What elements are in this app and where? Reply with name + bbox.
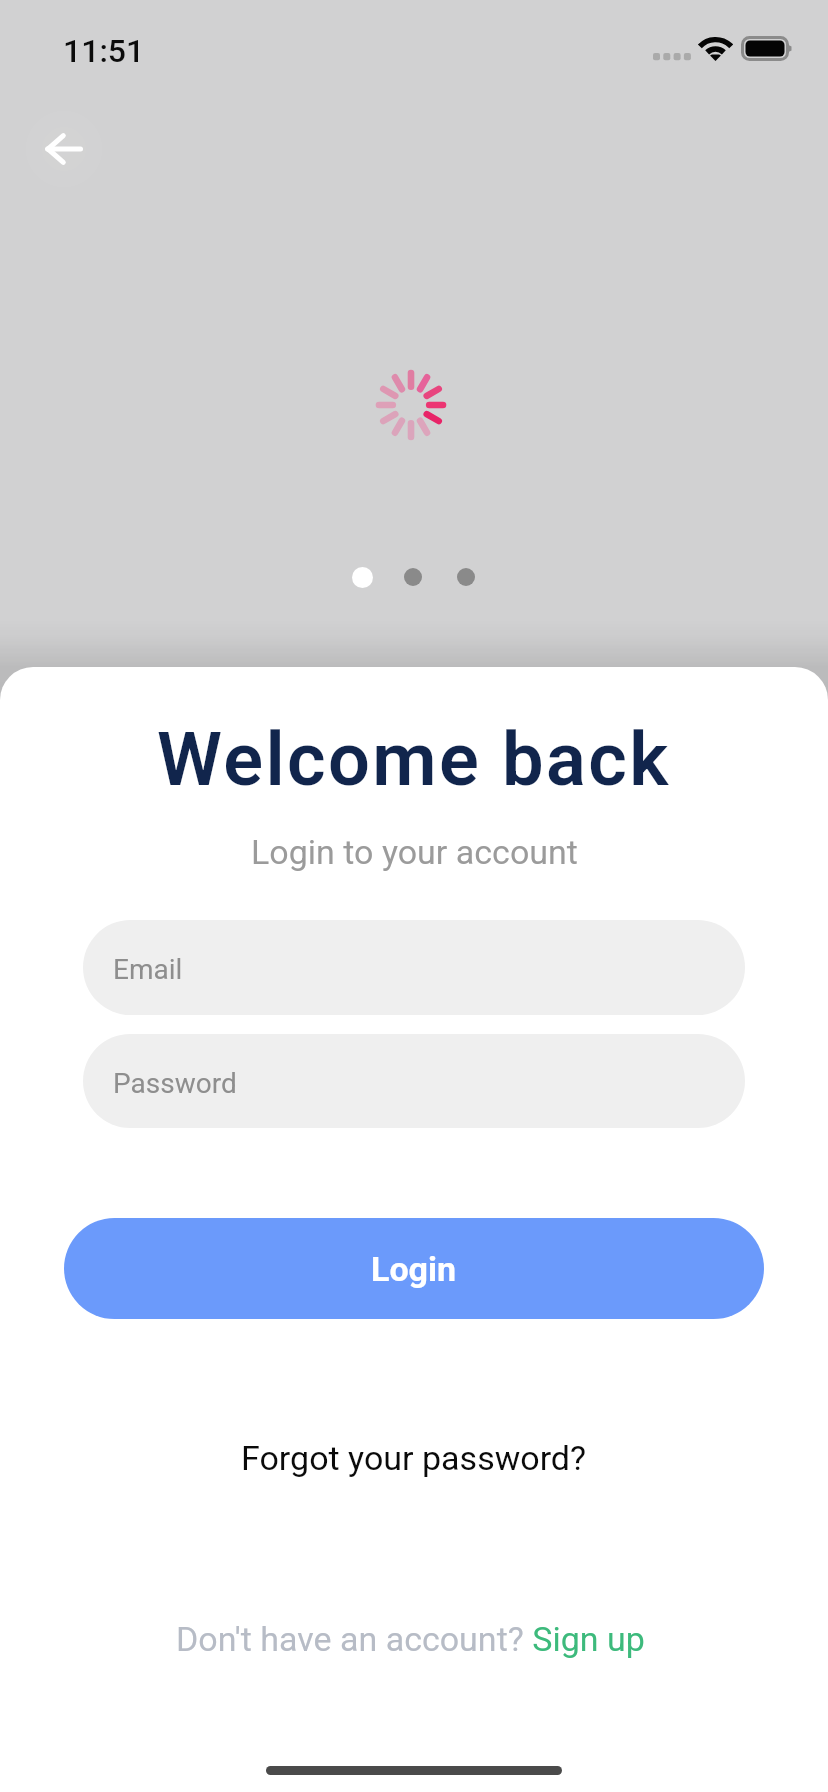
- button[interactable]: Forgot your password?: [241, 1438, 587, 1478]
- staticText: Forgot your password?: [241, 1438, 587, 1478]
- staticText: Password: [113, 1067, 237, 1100]
- button[interactable]: Don't have an account? Sign up: [176, 1619, 645, 1659]
- button[interactable]: Page 3: [457, 568, 475, 586]
- staticText: Login to your account: [251, 832, 578, 872]
- button[interactable]: Email: [83, 920, 745, 1015]
- staticText: 11:51: [63, 32, 145, 70]
- button[interactable]: Page 1: [352, 567, 373, 588]
- staticText: Welcome back: [157, 716, 671, 803]
- other: Loading: [375, 369, 447, 441]
- staticText: Don't have an account? Sign up: [176, 1619, 645, 1659]
- button[interactable]: Back: [17, 102, 111, 196]
- button[interactable]: Password: [83, 1034, 745, 1128]
- button[interactable]: Login: [64, 1218, 764, 1319]
- staticText: Email: [113, 953, 183, 986]
- staticText: Login: [371, 1249, 457, 1289]
- button[interactable]: Page 2: [404, 568, 422, 586]
